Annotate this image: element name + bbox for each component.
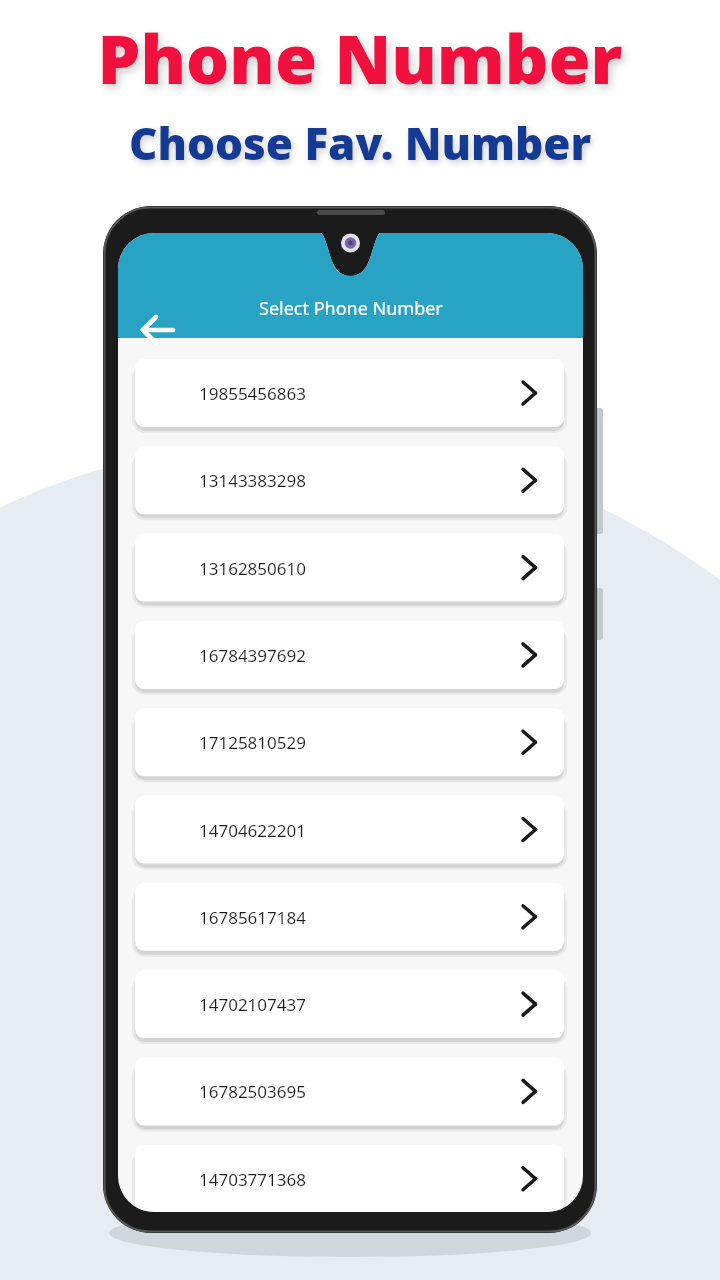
staticText: 17125810529 (199, 731, 306, 754)
staticText: Select Phone Number (259, 296, 443, 321)
button[interactable]: 19855456863 (135, 359, 564, 427)
button[interactable]: 17125810529 (135, 708, 564, 776)
staticText: 14704622201 (199, 819, 306, 842)
staticText: 16784397692 (199, 644, 306, 667)
button[interactable]: 13143383298 (135, 446, 564, 514)
button[interactable]: 14703771368 (135, 1145, 564, 1213)
button[interactable]: 14704622201 (135, 796, 564, 864)
staticText: 14703771368 (199, 1168, 306, 1191)
button[interactable]: 14702107437 (135, 970, 564, 1038)
button[interactable]: 16785617184 (135, 883, 564, 951)
button[interactable]: 16784397692 (135, 621, 564, 689)
staticText: Choose Fav. Number (0, 113, 720, 173)
staticText: 16785617184 (199, 906, 306, 929)
button[interactable]: Back (128, 307, 184, 353)
button[interactable]: 16782503695 (135, 1057, 564, 1125)
staticText: 13162850610 (199, 557, 306, 580)
staticText: 13143383298 (199, 469, 306, 492)
button[interactable]: 13162850610 (135, 534, 564, 602)
staticText: 14702107437 (199, 993, 306, 1016)
staticText: Phone Number (0, 11, 720, 104)
staticText: 19855456863 (199, 382, 306, 405)
staticText: 16782503695 (199, 1080, 306, 1103)
